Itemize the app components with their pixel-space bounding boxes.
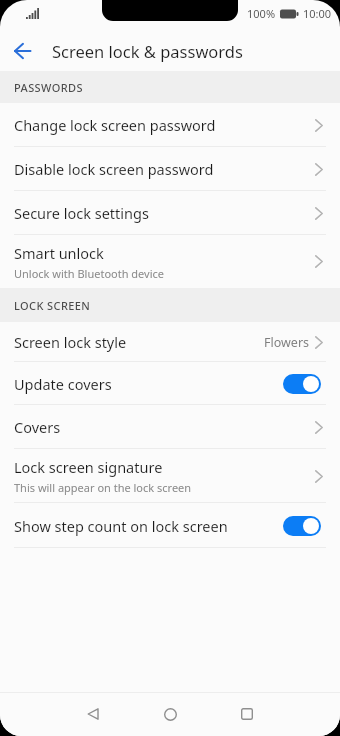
button[interactable]: Screen lock style	[0, 322, 340, 362]
staticText: Lock screen signature	[14, 457, 163, 477]
button[interactable]: Change lock screen password	[0, 103, 340, 147]
staticText: Covers	[14, 417, 61, 437]
button[interactable]	[283, 516, 321, 536]
button[interactable]: Update covers	[0, 362, 340, 405]
button[interactable]: Disable lock screen password	[0, 147, 340, 191]
staticText: Unlock with Bluetooth device	[14, 266, 165, 281]
button[interactable]: Show step count on lock screen	[0, 503, 340, 548]
staticText: 100%	[247, 6, 276, 21]
button[interactable]: Lock screen signature	[0, 449, 340, 503]
button[interactable]: Smart unlock	[0, 235, 340, 288]
staticText: This will appear on the lock screen	[14, 480, 192, 495]
staticText: Update covers	[14, 374, 112, 394]
button[interactable]: Secure lock settings	[0, 191, 340, 235]
staticText: Smart unlock	[14, 243, 104, 263]
button[interactable]	[225, 692, 269, 736]
button[interactable]	[148, 692, 192, 736]
staticText: Screen lock & passwords	[52, 40, 243, 62]
staticText: Show step count on lock screen	[14, 516, 228, 536]
staticText: 10:00	[303, 6, 332, 21]
staticText: Change lock screen password	[14, 115, 216, 135]
staticText: Screen lock style	[14, 332, 127, 352]
button[interactable]: Covers	[0, 405, 340, 449]
staticText: PASSWORDS	[14, 80, 83, 95]
staticText: Secure lock settings	[14, 203, 149, 223]
button[interactable]	[283, 374, 321, 394]
staticText: Disable lock screen password	[14, 159, 214, 179]
staticText: Flowers	[264, 334, 310, 351]
button[interactable]	[0, 30, 45, 71]
staticText: LOCK SCREEN	[14, 298, 91, 313]
button[interactable]	[71, 692, 115, 736]
